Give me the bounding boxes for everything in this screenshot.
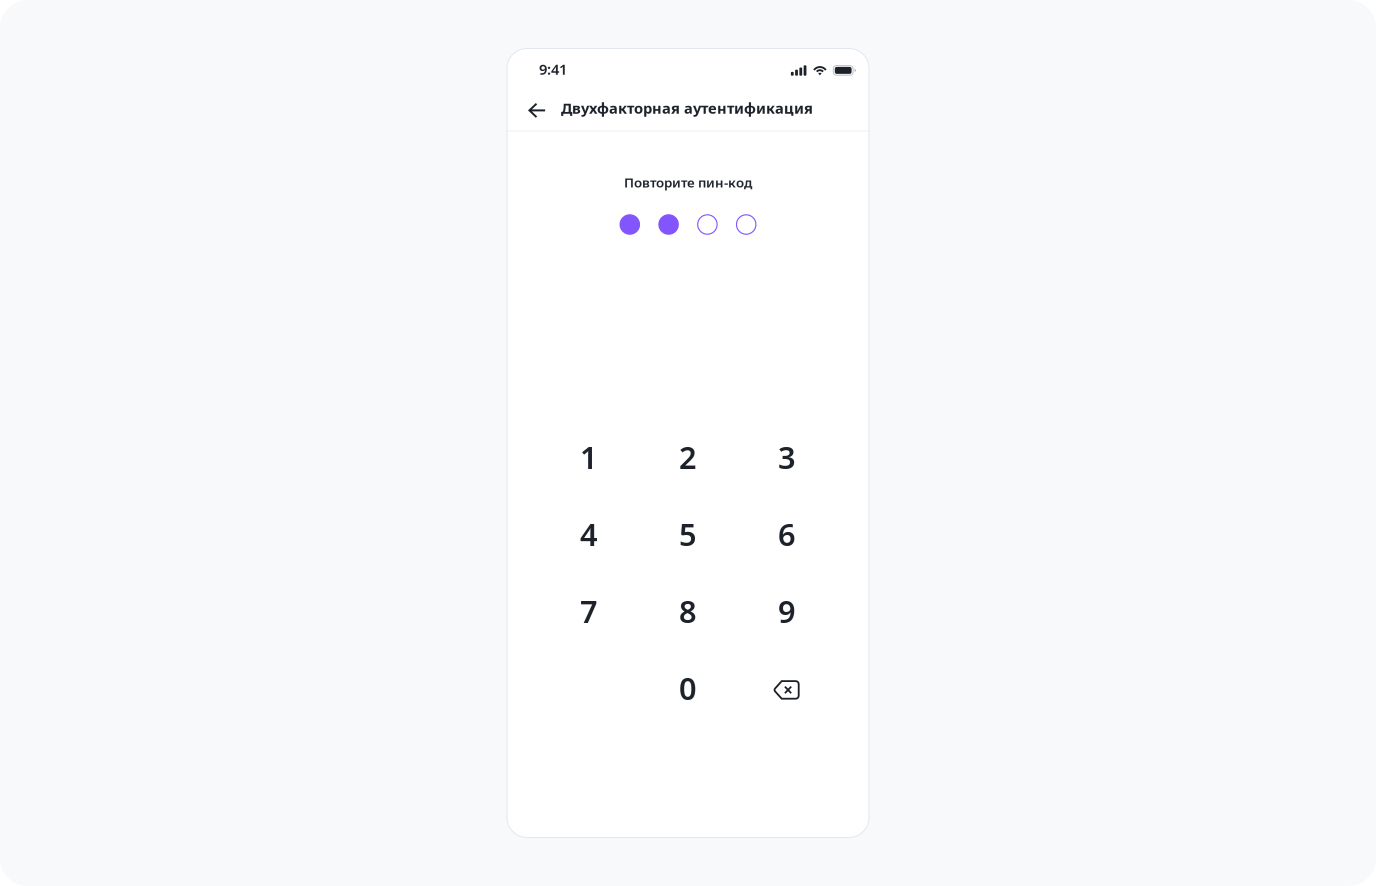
staticText: Повторите пин-код	[624, 173, 752, 191]
staticText: 8	[679, 591, 697, 631]
button[interactable]: 2	[638, 418, 737, 495]
button[interactable]: 5	[638, 495, 737, 572]
staticText: 6	[778, 514, 796, 554]
staticText: 9:41	[539, 59, 567, 79]
staticText: 1	[580, 437, 598, 477]
button[interactable]: 8	[638, 572, 737, 649]
button[interactable]: 7	[539, 572, 638, 649]
button[interactable]: 1	[539, 418, 638, 495]
button[interactable]: 3	[737, 418, 836, 495]
button[interactable]: Delete	[737, 649, 836, 726]
button[interactable]: 0	[638, 649, 737, 726]
staticText: 3	[778, 437, 796, 477]
staticText: Двухфакторная аутентификация	[561, 98, 813, 118]
button[interactable]: 4	[539, 495, 638, 572]
staticText: 0	[679, 668, 697, 708]
staticText: 7	[580, 591, 598, 631]
staticText: 5	[679, 514, 697, 554]
button[interactable]: 6	[737, 495, 836, 572]
staticText: 2	[679, 437, 697, 477]
staticText: 9	[778, 591, 796, 631]
button[interactable]: Back	[528, 89, 561, 130]
button[interactable]: 9	[737, 572, 836, 649]
staticText: 4	[580, 514, 598, 554]
